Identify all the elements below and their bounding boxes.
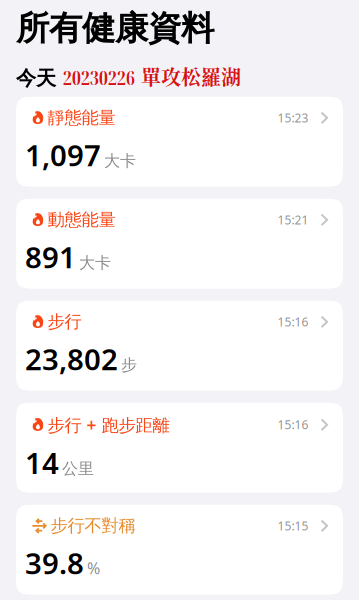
staticText: 15:16 [277,417,308,433]
staticText: 15:21 [277,212,308,228]
staticText: 步行 + 跑步距離 [47,413,169,436]
staticText: 今天 [16,66,56,91]
staticText: 動態能量 [47,209,115,230]
button[interactable]: 動態能量 [16,199,343,289]
button[interactable]: 步行不對稱 [16,505,343,595]
button[interactable]: 步行 + 跑步距離 [16,403,343,493]
staticText: 步行不對稱 [50,515,135,536]
staticText: 891 [25,237,76,276]
staticText: 步行 [47,311,81,332]
button[interactable]: 靜態能量 [16,97,343,187]
staticText: 大卡 [104,151,136,171]
staticText: 單攻松羅湖 [141,62,241,91]
staticText: 公里 [62,459,94,479]
staticText: 15:23 [277,110,308,126]
staticText: 大卡 [79,253,111,273]
staticText: 靜態能量 [47,107,115,128]
button[interactable]: 步行 [16,301,343,391]
staticText: 23,802 [25,339,118,378]
staticText: 15:15 [277,518,308,534]
staticText: 1,097 [25,135,101,174]
staticText: 20230226 [63,64,135,91]
staticText: % [87,557,100,579]
staticText: 15:16 [277,314,308,330]
staticText: 14 [25,443,59,482]
staticText: 所有健康資料 [16,8,214,49]
staticText: 步 [121,355,137,375]
staticText: 39.8 [25,543,84,582]
